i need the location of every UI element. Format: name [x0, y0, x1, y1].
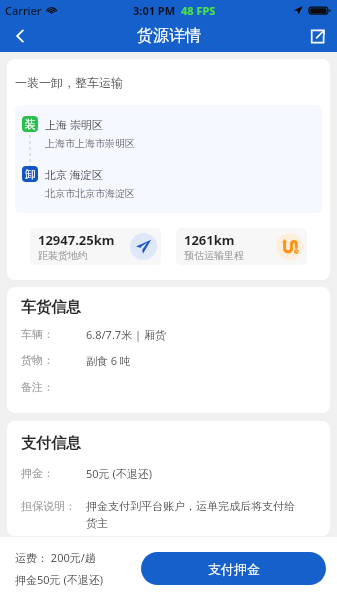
staticText: 预估运输里程	[184, 249, 244, 262]
staticText: 上海市上海市崇明区	[45, 137, 135, 150]
staticText: 3:01 PM	[133, 3, 176, 18]
staticText: 押金支付到平台账户，运单完成后将支付给货主	[86, 499, 295, 530]
staticText: 副食 6 吨	[86, 353, 132, 368]
staticText: 北京市北京市海淀区	[45, 187, 135, 200]
staticText: 运费： 200元/趟	[15, 550, 96, 565]
staticText: 备注：	[21, 380, 86, 394]
staticText: 50元 (不退还)	[86, 466, 153, 481]
staticText: Carrier	[5, 3, 42, 18]
button[interactable]: Share	[297, 20, 337, 52]
staticText: 上海 崇明区	[45, 117, 103, 132]
staticText: 一装一卸，整车运输	[15, 75, 123, 90]
staticText: 装	[25, 117, 36, 131]
staticText: 货源详情	[137, 26, 201, 46]
staticText: 距装货地约	[38, 249, 88, 262]
staticText: 北京 海淀区	[45, 167, 103, 182]
staticText: 押金：	[21, 466, 86, 480]
staticText: 担保说明：	[21, 499, 86, 513]
staticText: 48 FPS	[181, 3, 216, 18]
staticText: 车辆：	[21, 327, 86, 341]
staticText: 车货信息	[21, 298, 81, 317]
button[interactable]: Back	[0, 20, 40, 52]
staticText: 卸	[25, 167, 36, 181]
staticText: 12947.25km	[38, 231, 115, 249]
staticText: 货物：	[21, 353, 86, 367]
staticText: 6.8/7.7米 | 厢货	[86, 327, 166, 342]
staticText: 押金50元 (不退还)	[15, 572, 104, 587]
staticText: 支付押金	[208, 561, 260, 577]
staticText: 支付信息	[21, 434, 81, 453]
staticText: 1261km	[184, 231, 235, 249]
button[interactable]: 支付押金	[141, 552, 326, 585]
